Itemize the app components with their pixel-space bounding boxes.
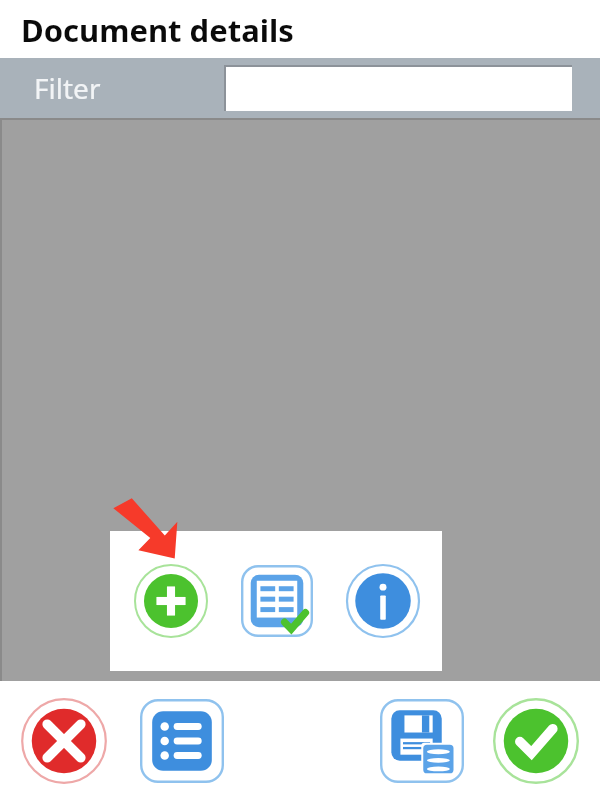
- button[interactable]: Save to database: [374, 693, 470, 789]
- staticText: Document details: [21, 9, 294, 51]
- button[interactable]: Information: [342, 560, 424, 642]
- button[interactable]: Add: [130, 560, 212, 642]
- button[interactable]: Cancel: [16, 693, 112, 789]
- button[interactable]: Document with details: [236, 560, 318, 642]
- staticText: Filter: [34, 69, 101, 107]
- button[interactable]: Confirm: [488, 693, 584, 789]
- button[interactable]: List: [134, 693, 230, 789]
